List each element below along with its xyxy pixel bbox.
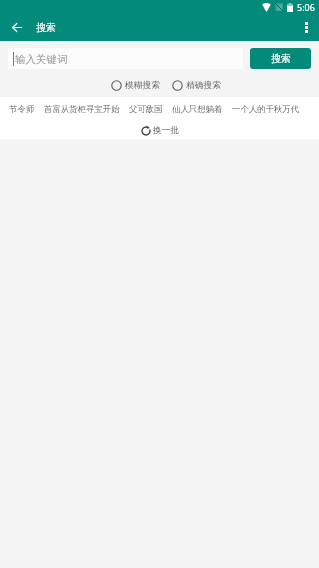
button[interactable]: 精确搜索	[172, 80, 222, 91]
button[interactable]: More options	[294, 15, 319, 40]
staticText: 换一批	[153, 125, 180, 136]
staticText: 输入关键词	[15, 53, 68, 66]
staticText: 精确搜索	[186, 80, 222, 91]
button[interactable]: Back	[4, 15, 29, 40]
staticText: 5:06	[297, 1, 315, 13]
button[interactable]: 一个人的千秋万代	[232, 104, 300, 115]
staticText: 仙人只想躺着	[172, 104, 223, 115]
staticText: 搜索	[271, 52, 291, 65]
staticText: 模糊搜索	[125, 80, 161, 91]
button[interactable]: 节令师	[9, 104, 35, 115]
staticText: 父可敌国	[129, 104, 163, 115]
button[interactable]: 仙人只想躺着	[172, 104, 223, 115]
staticText: 搜索	[36, 21, 56, 34]
button[interactable]: 模糊搜索	[111, 80, 161, 91]
staticText: 一个人的千秋万代	[232, 104, 300, 115]
button[interactable]: 首富从货柜寻宝开始	[44, 104, 120, 115]
staticText: 节令师	[9, 104, 35, 115]
staticText: 首富从货柜寻宝开始	[44, 104, 120, 115]
button[interactable]: 输入关键词	[8, 48, 243, 69]
button[interactable]: 父可敌国	[129, 104, 163, 115]
button[interactable]: 换一批	[140, 125, 180, 136]
button[interactable]: 搜索	[250, 48, 311, 69]
